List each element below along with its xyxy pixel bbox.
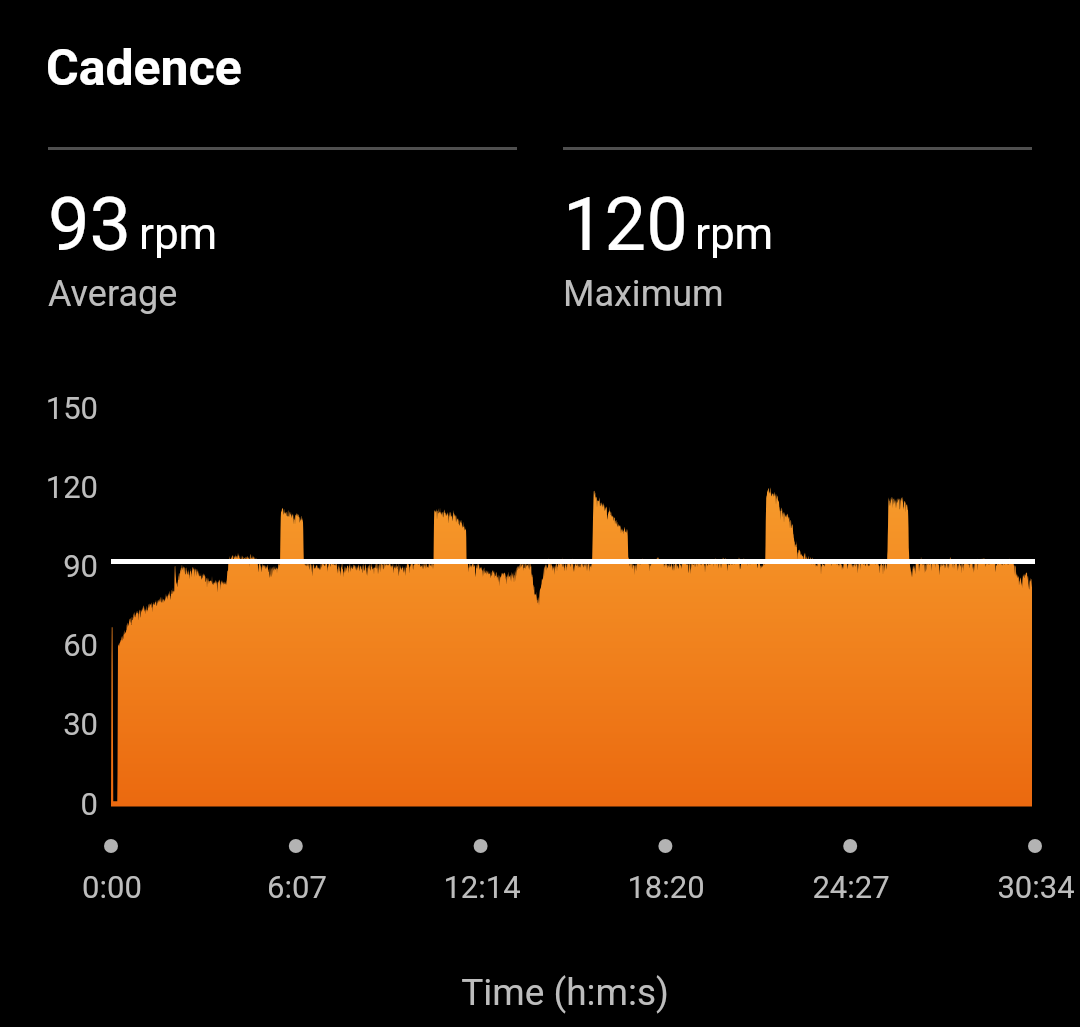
staticText: 30 <box>3 706 98 742</box>
button[interactable]: 120 <box>563 181 774 315</box>
staticText: 0:00 <box>2 869 222 905</box>
staticText: 60 <box>3 627 98 663</box>
staticText: 18:20 <box>556 869 776 905</box>
staticText: 6:07 <box>187 869 407 905</box>
staticText: 90 <box>3 548 98 584</box>
staticText: 30:34 <box>926 869 1080 905</box>
staticText: rpm <box>695 208 774 260</box>
staticText: rpm <box>139 208 218 260</box>
staticText: Maximum <box>563 273 724 315</box>
button[interactable]: Cadence <box>46 39 242 98</box>
staticText: 12:14 <box>372 869 592 905</box>
staticText: Cadence <box>46 39 242 98</box>
staticText: 0 <box>3 786 98 822</box>
staticText: 120 <box>3 469 98 505</box>
staticText: 120 <box>563 181 688 268</box>
staticText: 93 <box>48 181 132 268</box>
staticText: Time (h:m:s) <box>25 971 1080 1014</box>
staticText: Average <box>48 273 178 315</box>
staticText: 24:27 <box>741 869 961 905</box>
staticText: 150 <box>3 390 98 426</box>
button[interactable]: 93 <box>48 181 218 315</box>
button[interactable]: Cadence chart over time <box>105 390 1040 815</box>
